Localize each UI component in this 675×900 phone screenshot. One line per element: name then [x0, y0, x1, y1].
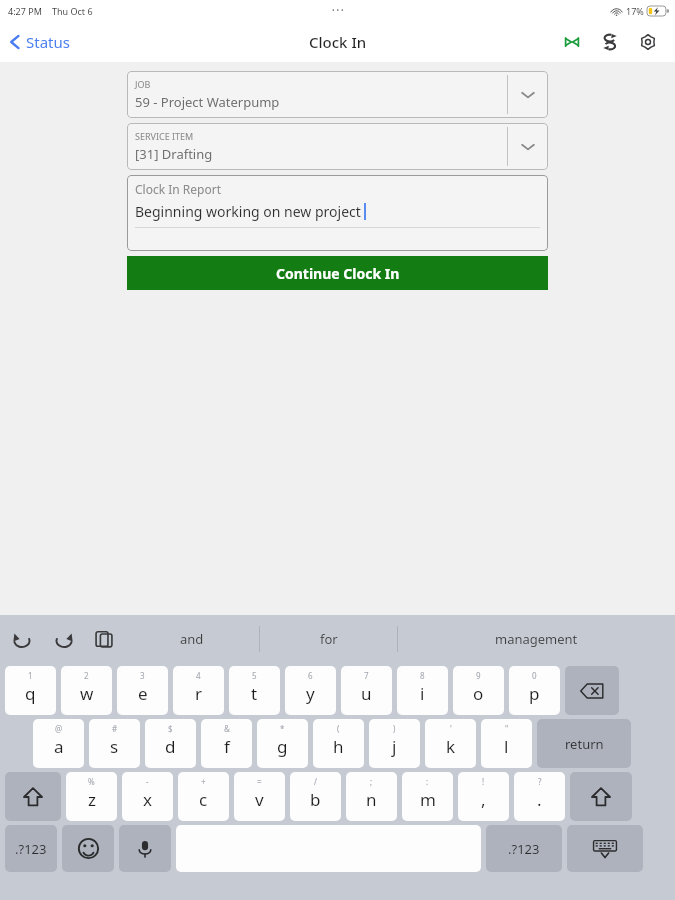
staticText: Beginning working on new project — [135, 202, 361, 221]
button[interactable]: and — [124, 615, 259, 663]
button[interactable]: Paste — [84, 619, 124, 659]
button[interactable]: Clock In Report — [127, 175, 548, 251]
staticText: m — [420, 788, 436, 811]
button[interactable]: Emoji — [62, 825, 114, 872]
button[interactable]: Redo — [44, 619, 84, 659]
staticText: - — [146, 776, 149, 787]
button[interactable]: Shift — [570, 772, 632, 821]
staticText: SERVICE ITEM — [135, 130, 194, 142]
staticText: z — [88, 788, 96, 811]
button[interactable]: Settings — [633, 27, 663, 57]
staticText: % — [88, 776, 95, 787]
button[interactable]: SERVICE ITEM — [127, 123, 548, 170]
staticText: Thu Oct 6 — [52, 5, 93, 17]
staticText: f — [224, 735, 230, 758]
staticText: , — [481, 788, 486, 811]
button[interactable]: Hide keyboard — [567, 825, 643, 872]
button[interactable]: 3 — [117, 666, 168, 715]
staticText: y — [306, 682, 315, 705]
button[interactable]: ? — [514, 772, 565, 821]
staticText: ( — [337, 723, 340, 734]
staticText: 5 — [252, 670, 257, 681]
button[interactable]: .?123 — [5, 825, 57, 872]
staticText: * — [280, 723, 285, 734]
staticText: s — [110, 735, 119, 758]
staticText: 3 — [140, 670, 145, 681]
staticText: # — [112, 723, 118, 734]
button[interactable]: 1 — [5, 666, 56, 715]
button[interactable]: 4 — [173, 666, 224, 715]
staticText: Clock In — [309, 32, 367, 52]
staticText: c — [199, 788, 208, 811]
button[interactable]: 5 — [229, 666, 280, 715]
button[interactable]: / — [290, 772, 341, 821]
button[interactable]: : — [402, 772, 453, 821]
button[interactable]: 8 — [397, 666, 448, 715]
button[interactable]: # — [89, 719, 140, 768]
button[interactable]: @ — [33, 719, 84, 768]
button[interactable]: Continue Clock In — [127, 256, 548, 290]
button[interactable]: % — [66, 772, 117, 821]
staticText: = — [257, 776, 262, 787]
button[interactable]: return — [537, 719, 631, 768]
button[interactable]: $ — [145, 719, 196, 768]
staticText: k — [446, 735, 456, 758]
button[interactable]: management — [398, 615, 675, 663]
staticText: $ — [168, 723, 173, 734]
staticText: ! — [482, 776, 485, 787]
button[interactable]: * — [257, 719, 308, 768]
button[interactable]: for — [260, 615, 397, 663]
staticText: 0 — [532, 670, 537, 681]
staticText: b — [310, 788, 321, 811]
staticText: & — [224, 723, 230, 734]
staticText: o — [473, 682, 484, 705]
staticText: Clock In Report — [135, 181, 221, 197]
button[interactable]: " — [481, 719, 532, 768]
staticText: : — [426, 776, 429, 787]
staticText: 6 — [308, 670, 313, 681]
staticText: a — [54, 735, 64, 758]
button[interactable]: - — [122, 772, 173, 821]
button[interactable]: ) — [369, 719, 420, 768]
button[interactable]: ! — [458, 772, 509, 821]
staticText: 1 — [28, 670, 33, 681]
staticText: Status — [26, 32, 70, 52]
button[interactable]: + — [178, 772, 229, 821]
staticText: h — [333, 735, 344, 758]
staticText: q — [25, 682, 36, 705]
button[interactable]: Dictation — [119, 825, 171, 872]
button[interactable]: JOB — [127, 71, 548, 118]
button[interactable]: & — [201, 719, 252, 768]
staticText: d — [165, 735, 176, 758]
button[interactable]: ; — [346, 772, 397, 821]
button[interactable]: Undo — [0, 617, 44, 661]
button[interactable]: Backspace — [565, 666, 619, 715]
staticText: l — [504, 735, 509, 758]
staticText: 17% — [626, 5, 644, 17]
staticText: Continue Clock In — [276, 264, 400, 283]
staticText: " — [505, 723, 509, 734]
button[interactable]: Status — [0, 28, 80, 56]
staticText: • • • — [332, 6, 344, 16]
button[interactable]: Connection status — [557, 27, 587, 57]
button[interactable]: 9 — [453, 666, 504, 715]
button[interactable]: ( — [313, 719, 364, 768]
staticText: e — [138, 682, 148, 705]
button[interactable]: 6 — [285, 666, 336, 715]
staticText: ) — [393, 723, 396, 734]
staticText: w — [80, 682, 94, 705]
staticText: return — [565, 735, 604, 753]
staticText: JOB — [135, 78, 151, 90]
staticText: .?123 — [508, 840, 540, 858]
button[interactable]: 7 — [341, 666, 392, 715]
button[interactable]: 2 — [61, 666, 112, 715]
button[interactable]: .?123 — [486, 825, 562, 872]
button[interactable]: Sync — [595, 27, 625, 57]
button[interactable]: Shift — [5, 772, 61, 821]
staticText: r — [195, 682, 203, 705]
staticText: and — [180, 630, 204, 648]
button[interactable]: = — [234, 772, 285, 821]
button[interactable]: 0 — [509, 666, 560, 715]
button[interactable]: ' — [425, 719, 476, 768]
